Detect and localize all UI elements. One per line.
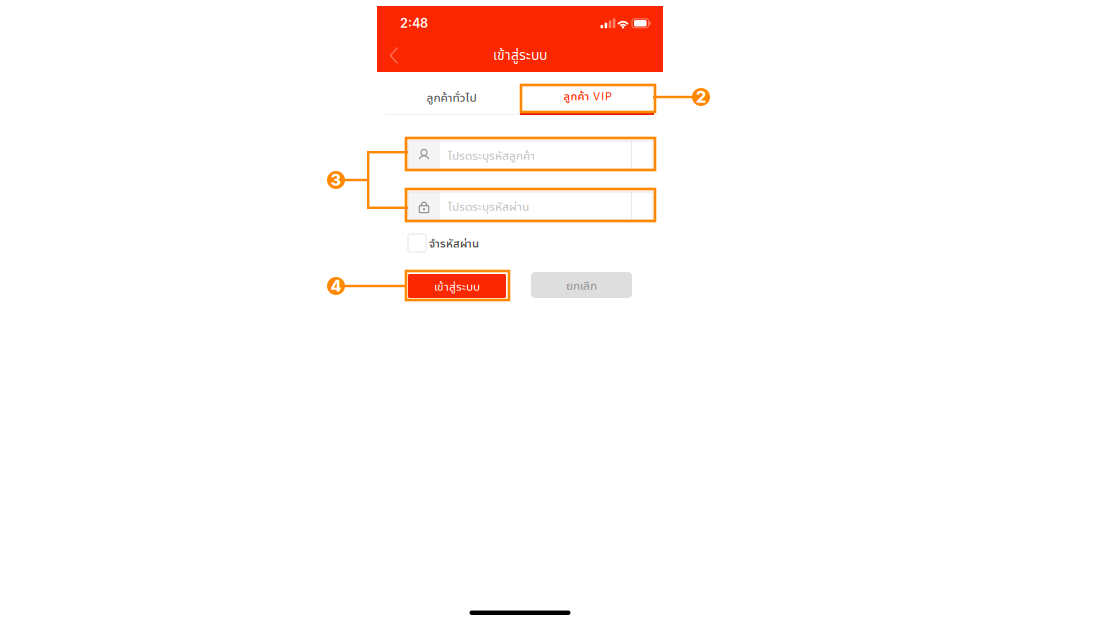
staticText: 3 <box>330 170 341 190</box>
staticText: โปรดระบุรหัสลูกค้า <box>448 147 535 163</box>
staticText: จำรหัสผ่าน <box>429 235 479 251</box>
button[interactable]: ยกเลิก <box>531 272 632 298</box>
button[interactable]: จำรหัสผ่าน <box>408 234 652 252</box>
staticText: ยกเลิก <box>566 277 597 293</box>
staticText: ลูกค้า VIP <box>563 88 611 104</box>
staticText: ลูกค้าทั่วไป <box>426 89 476 105</box>
button[interactable]: ลูกค้า VIP <box>520 72 663 115</box>
button[interactable]: ลูกค้าทั่วไป <box>377 72 520 115</box>
staticText: โปรดระบุรหัสผ่าน <box>448 198 529 214</box>
staticText: 4 <box>330 276 341 296</box>
staticText: 2:48 <box>400 16 428 31</box>
button[interactable]: เข้าสู่ระบบ <box>408 274 506 298</box>
staticText: 2 <box>696 87 706 107</box>
staticText: เข้าสู่ระบบ <box>493 45 547 64</box>
staticText: เข้าสู่ระบบ <box>434 278 480 294</box>
button[interactable]: Back <box>383 43 407 69</box>
